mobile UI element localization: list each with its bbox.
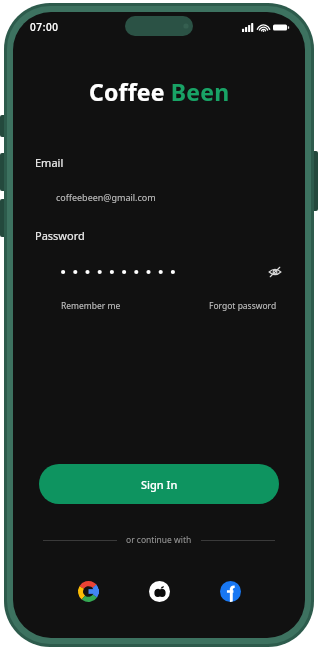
staticText: 07:00: [30, 20, 59, 34]
button[interactable]: Continue with Facebook: [217, 578, 243, 604]
button[interactable]: coffeebeen@gmail.com: [13, 186, 305, 208]
staticText: or continue with: [126, 534, 192, 546]
button[interactable]: Hide password: [262, 260, 288, 284]
staticText: Sign In: [141, 477, 178, 492]
staticText: Password: [35, 228, 85, 243]
button[interactable]: Continue with Google: [75, 578, 101, 604]
staticText: coffeebeen@gmail.com: [56, 191, 156, 203]
staticText: Email: [35, 155, 64, 170]
staticText: Forgot password: [209, 300, 277, 312]
button[interactable]: Hide password: [13, 260, 305, 284]
staticText: Remember me: [61, 300, 121, 312]
button[interactable]: Continue with Apple: [146, 578, 172, 604]
staticText: Coffee Been: [89, 76, 230, 107]
button[interactable]: Forgot password: [209, 300, 277, 312]
button[interactable]: Sign In: [39, 464, 279, 504]
button[interactable]: Remember me: [61, 300, 121, 312]
